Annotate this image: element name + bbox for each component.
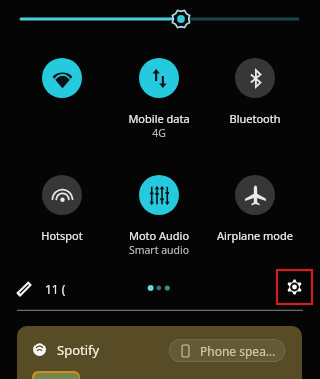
staticText: Mobile data bbox=[99, 111, 219, 126]
button[interactable]: Bluetooth bbox=[235, 58, 275, 98]
button[interactable]: Settings bbox=[276, 269, 313, 305]
button[interactable]: Hotspot bbox=[42, 175, 82, 215]
button[interactable]: Airplane mode bbox=[235, 175, 275, 215]
staticText: 4G bbox=[99, 126, 219, 140]
staticText: 11 ( bbox=[45, 281, 66, 297]
staticText: Airplane mode bbox=[195, 228, 315, 243]
staticText: Smart audio bbox=[99, 243, 219, 257]
button[interactable]: Wi-Fi bbox=[42, 58, 82, 98]
button[interactable]: Moto Audio bbox=[139, 175, 179, 215]
staticText: Hotspot bbox=[2, 228, 122, 243]
button[interactable]: Brightness bbox=[0, 0, 320, 40]
staticText: Spotify bbox=[57, 341, 100, 359]
button[interactable]: Spotify bbox=[17, 326, 302, 379]
staticText: Phone spea… bbox=[200, 343, 276, 359]
staticText: Moto Audio bbox=[99, 228, 219, 243]
button[interactable]: Mobile data bbox=[139, 58, 179, 98]
button[interactable]: Phone speaker bbox=[169, 339, 285, 362]
staticText: Bluetooth bbox=[195, 111, 315, 126]
button[interactable]: Edit tiles bbox=[12, 277, 36, 301]
